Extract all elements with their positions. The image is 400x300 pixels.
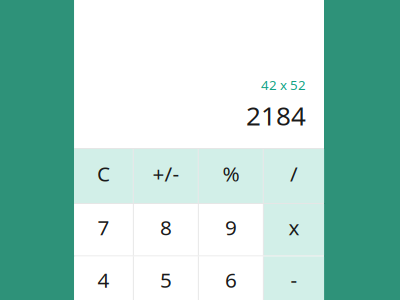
- staticText: 2184: [246, 98, 306, 133]
- button[interactable]: 9: [199, 204, 263, 255]
- button[interactable]: C: [74, 149, 133, 203]
- button[interactable]: x: [264, 204, 324, 255]
- button[interactable]: 7: [74, 204, 133, 255]
- staticText: -: [290, 266, 297, 294]
- staticText: 6: [225, 266, 237, 294]
- button[interactable]: 4: [74, 256, 133, 300]
- button[interactable]: 8: [134, 204, 198, 255]
- staticText: %: [222, 159, 239, 187]
- staticText: 4: [97, 266, 109, 294]
- staticText: C: [97, 159, 110, 187]
- button[interactable]: +/-: [134, 149, 198, 203]
- staticText: 9: [225, 213, 237, 241]
- staticText: 7: [97, 213, 109, 241]
- button[interactable]: 5: [134, 256, 198, 300]
- staticText: /: [290, 159, 298, 187]
- staticText: 42 x 52: [261, 76, 306, 94]
- button[interactable]: 6: [199, 256, 263, 300]
- button[interactable]: /: [264, 149, 324, 203]
- button[interactable]: %: [199, 149, 263, 203]
- staticText: +/-: [152, 159, 179, 187]
- button[interactable]: -: [264, 256, 324, 300]
- staticText: 5: [160, 266, 172, 294]
- staticText: x: [288, 213, 299, 241]
- staticText: 8: [160, 213, 172, 241]
